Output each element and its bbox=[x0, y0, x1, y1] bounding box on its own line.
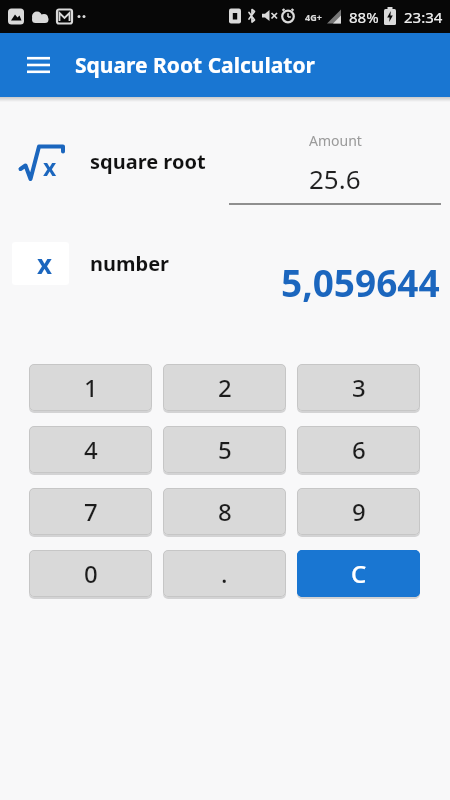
staticText: 3 bbox=[352, 371, 366, 404]
button[interactable] bbox=[16, 48, 60, 82]
staticText: 1 bbox=[84, 371, 98, 404]
button[interactable]: 7 bbox=[29, 488, 152, 535]
staticText: 6 bbox=[352, 433, 366, 466]
staticText: square root bbox=[90, 148, 206, 175]
staticText: number bbox=[90, 250, 170, 277]
staticText: 88% bbox=[349, 7, 379, 27]
staticText: 8 bbox=[218, 495, 232, 528]
staticText: 4G+ bbox=[305, 11, 322, 23]
staticText: x bbox=[43, 151, 57, 182]
staticText: . bbox=[221, 557, 228, 590]
button[interactable]: . bbox=[163, 550, 286, 597]
button[interactable]: 4 bbox=[29, 426, 152, 473]
button[interactable]: 6 bbox=[297, 426, 420, 473]
button[interactable]: 9 bbox=[297, 488, 420, 535]
button[interactable]: 8 bbox=[163, 488, 286, 535]
staticText: C bbox=[351, 557, 367, 590]
staticText: Square Root Calculator bbox=[75, 51, 315, 80]
staticText: x bbox=[37, 246, 53, 281]
staticText: 7 bbox=[84, 495, 98, 528]
button[interactable]: 1 bbox=[29, 364, 152, 411]
button[interactable]: 0 bbox=[29, 550, 152, 597]
staticText: 9 bbox=[352, 495, 366, 528]
staticText: 5,059644 bbox=[281, 257, 440, 307]
staticText: Amount bbox=[309, 131, 362, 150]
button[interactable]: 2 bbox=[163, 364, 286, 411]
staticText: 5 bbox=[218, 433, 232, 466]
staticText: 23:34 bbox=[404, 7, 443, 27]
button[interactable]: square root bbox=[90, 142, 206, 180]
staticText: 0 bbox=[84, 557, 98, 590]
button[interactable]: 3 bbox=[297, 364, 420, 411]
staticText: 2 bbox=[218, 371, 232, 404]
staticText: 4 bbox=[84, 433, 98, 466]
button[interactable]: number bbox=[90, 242, 170, 285]
button[interactable]: 25.6 bbox=[229, 158, 441, 198]
button[interactable]: C bbox=[297, 550, 420, 597]
button[interactable]: 5 bbox=[163, 426, 286, 473]
staticText: 25.6 bbox=[309, 161, 361, 196]
